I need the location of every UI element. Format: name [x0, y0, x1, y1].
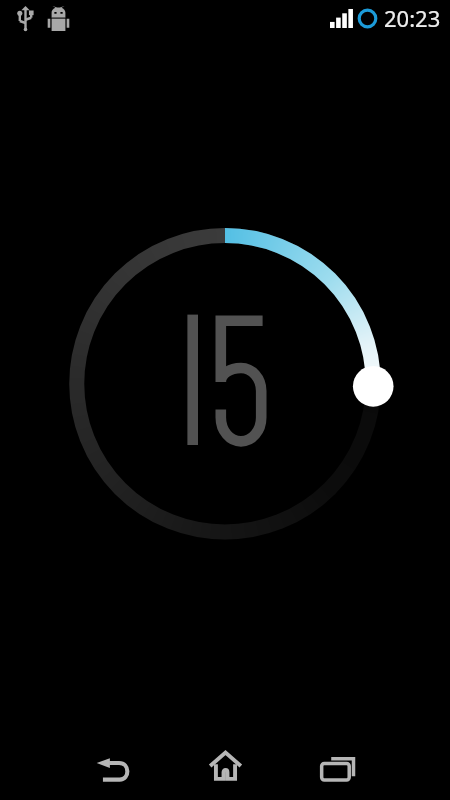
button[interactable]: Recent apps: [300, 738, 375, 800]
button[interactable]: Home: [188, 735, 263, 797]
staticText: 20:23: [384, 3, 441, 33]
button[interactable]: Timer, 15 minutes remaining: [61, 220, 389, 548]
button[interactable]: Back: [75, 738, 150, 800]
